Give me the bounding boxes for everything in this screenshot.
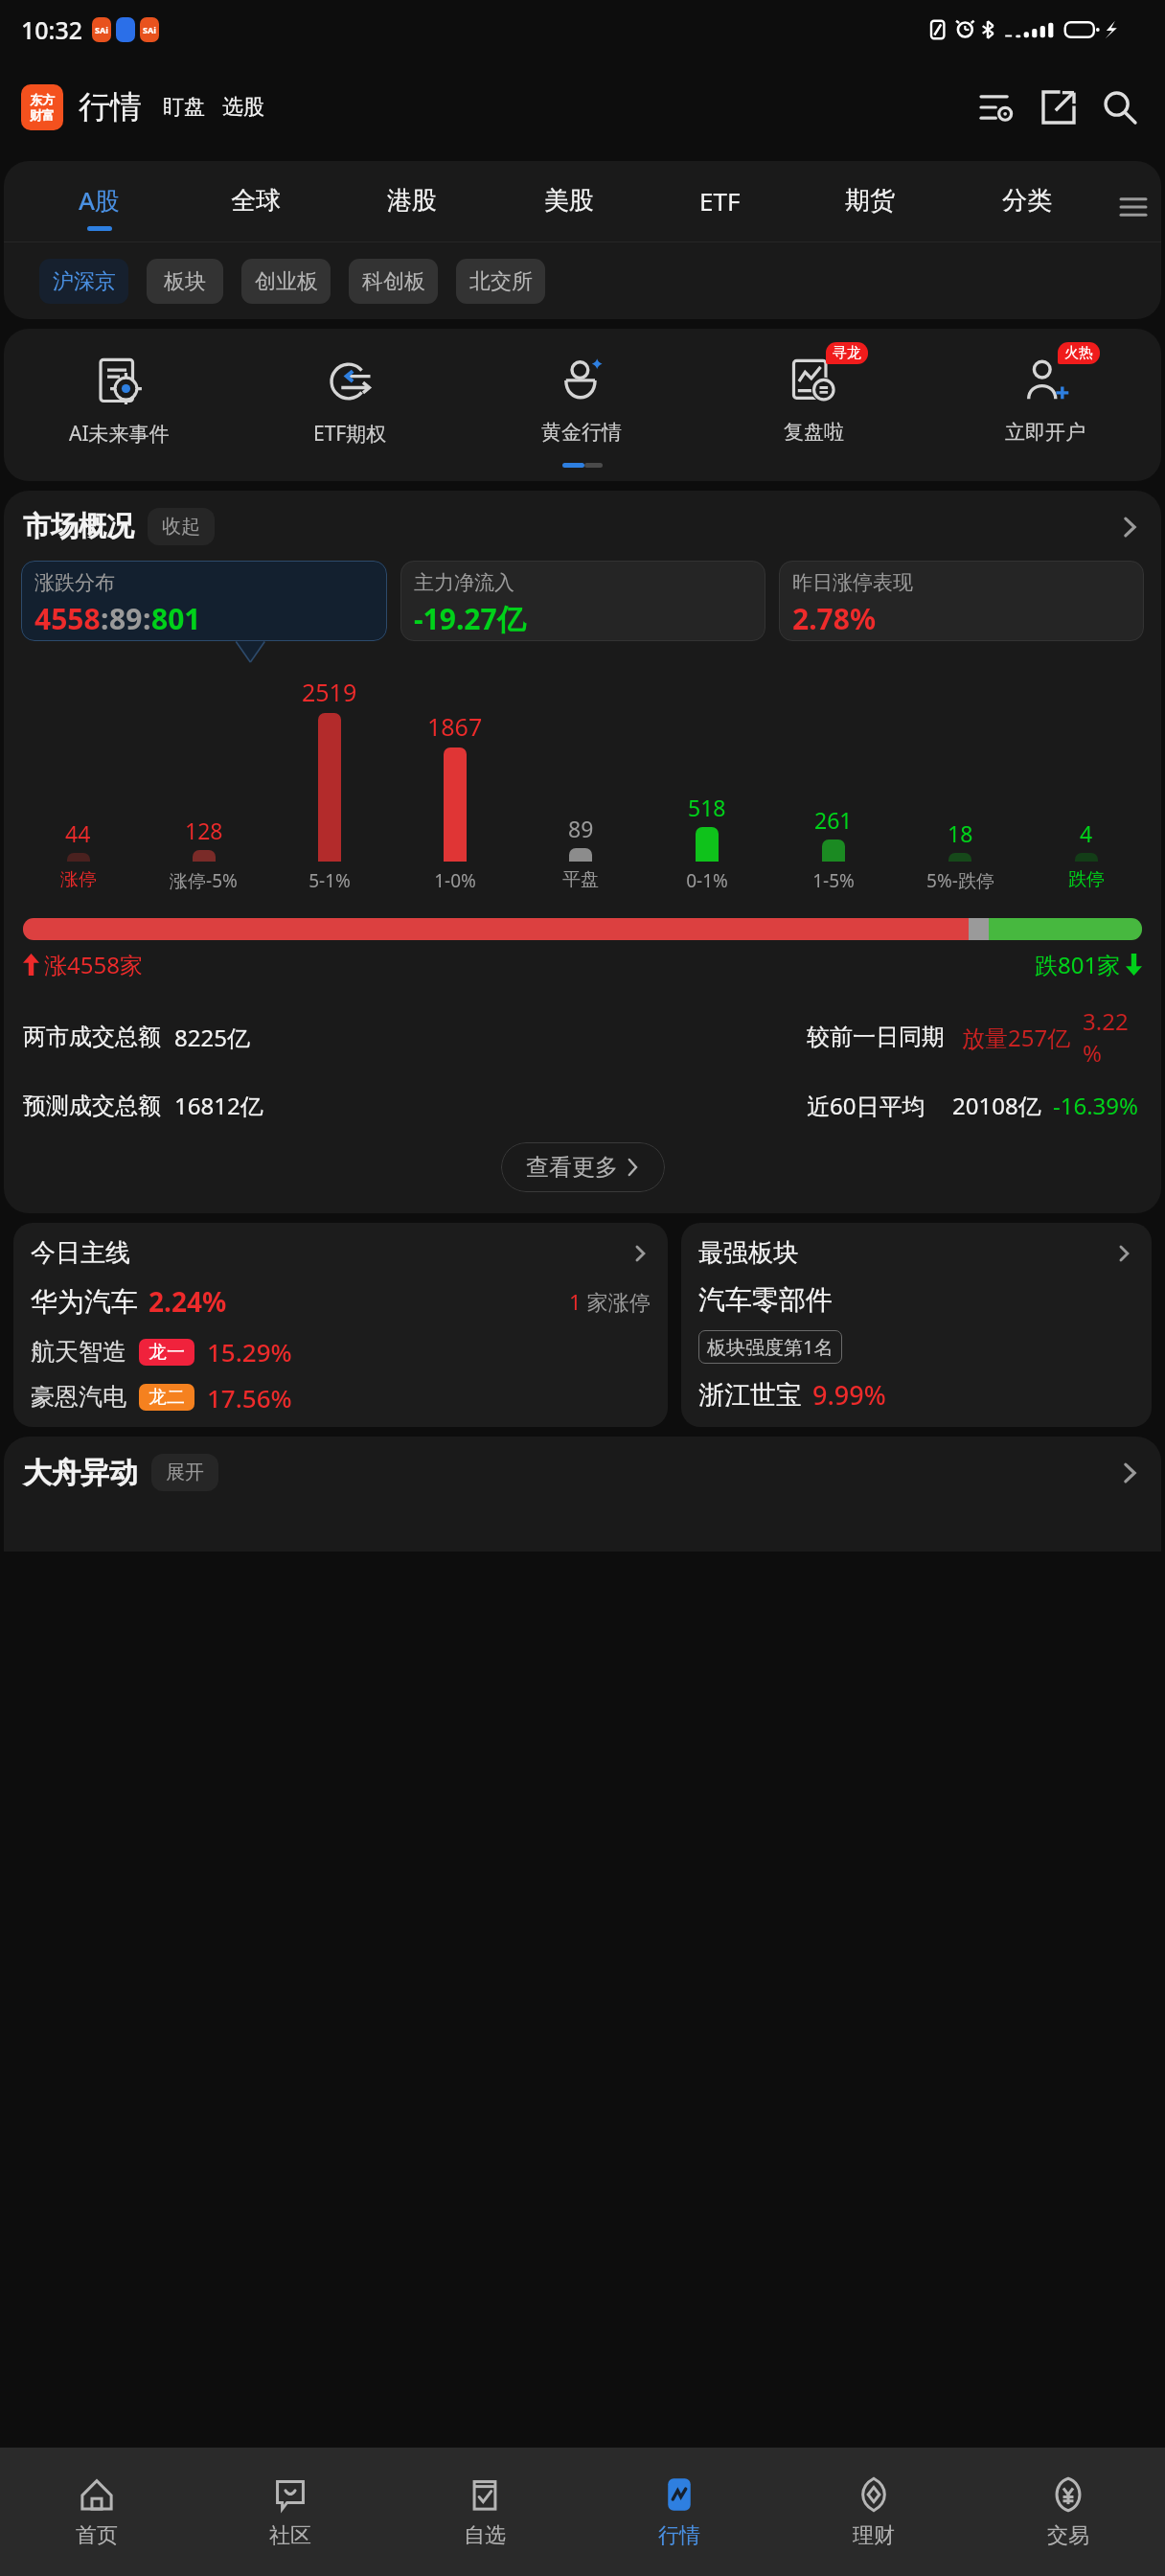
staticText: :	[101, 599, 109, 638]
button[interactable]: 黄金行情	[466, 350, 697, 445]
staticText: 5-1%	[308, 868, 351, 893]
staticText: 5%-跌停	[926, 868, 994, 893]
staticText: 1	[569, 1287, 582, 1316]
staticText: 大舟异动	[23, 1455, 138, 1491]
staticText: 复盘啦	[784, 420, 844, 445]
staticText: 89	[109, 599, 143, 638]
staticText: 放量257亿	[962, 1022, 1071, 1053]
button[interactable]: 自选	[387, 2448, 582, 2576]
staticText: 全球	[231, 185, 281, 217]
staticText: 2.24%	[148, 1283, 227, 1320]
staticText: 4558	[34, 599, 101, 638]
staticText: 北交所	[469, 268, 533, 295]
button[interactable]: 美股	[491, 172, 648, 241]
button[interactable]: 首页	[0, 2448, 194, 2576]
button[interactable]: 大舟异动	[23, 1454, 1142, 1491]
staticText: 15.29%	[207, 1335, 292, 1368]
staticText: 沪深京	[53, 268, 116, 295]
staticText: AI未来事件	[69, 420, 170, 448]
staticText: 两市成交总额	[23, 1023, 161, 1051]
staticText: 128	[185, 816, 223, 845]
staticText: 2519	[302, 676, 357, 708]
button[interactable]: 豪恩汽电	[31, 1381, 651, 1413]
button[interactable]: 港股	[333, 172, 491, 241]
staticText: 3.22%	[1083, 1005, 1142, 1069]
button[interactable]: 北交所	[456, 259, 545, 304]
staticText: 1-0%	[434, 868, 476, 893]
button[interactable]: 涨跌分布	[21, 561, 387, 641]
staticText: 16812亿	[174, 1090, 263, 1121]
staticText: 科创板	[362, 268, 425, 295]
button[interactable]: 航天智造	[31, 1335, 651, 1368]
staticText: 板块强度第1名	[707, 1334, 834, 1360]
staticText: 期货	[845, 185, 895, 217]
staticText: -16.39%	[1053, 1090, 1139, 1121]
button[interactable]: 沪深京	[39, 259, 128, 304]
button[interactable]: 查看更多	[501, 1142, 665, 1192]
staticText: 首页	[76, 2522, 118, 2549]
staticText: 龙一	[148, 1341, 185, 1364]
staticText: 4	[1080, 818, 1093, 848]
staticText: 航天智造	[31, 1337, 126, 1367]
staticText: 交易	[1047, 2522, 1089, 2549]
button[interactable]: 全球	[177, 172, 333, 241]
button[interactable]: ETF	[648, 172, 791, 241]
button[interactable]: 市场概况	[23, 508, 1142, 545]
button[interactable]: 社区	[194, 2448, 387, 2576]
button[interactable]: 交易	[971, 2448, 1165, 2576]
button[interactable]: 科创板	[349, 259, 438, 304]
button[interactable]: 昨日涨停表现	[779, 561, 1144, 641]
button[interactable]: 主力净流入	[400, 561, 765, 641]
staticText: 主力净流入	[414, 570, 514, 595]
button[interactable]: AI未来事件	[4, 350, 235, 448]
button[interactable]: 选股	[222, 94, 264, 121]
staticText: :	[143, 599, 151, 638]
button[interactable]: ETF期权	[235, 350, 466, 448]
staticText: 8225亿	[174, 1022, 250, 1053]
button[interactable]: 分类	[948, 172, 1106, 241]
staticText: 自选	[464, 2522, 506, 2549]
staticText: 最强板块	[698, 1237, 798, 1269]
button[interactable]: 理财	[776, 2448, 971, 2576]
staticText: 财富	[30, 107, 55, 123]
staticText: 涨停	[60, 868, 97, 891]
staticText: 518	[688, 793, 726, 822]
button[interactable]: 行情	[582, 2448, 776, 2576]
staticText: 港股	[387, 185, 437, 217]
button[interactable]: 火热	[929, 350, 1161, 445]
staticText: 今日主线	[31, 1237, 130, 1269]
button[interactable]: Settings list	[975, 85, 1019, 129]
staticText: 18	[948, 818, 973, 848]
staticText: 社区	[269, 2522, 311, 2549]
button[interactable]: A股	[21, 172, 177, 241]
staticText: 行情	[658, 2522, 700, 2549]
button[interactable]: Share	[1037, 85, 1081, 129]
button[interactable]: 盯盘	[163, 94, 205, 121]
button[interactable]: 最强板块	[681, 1223, 1152, 1427]
staticText: 黄金行情	[541, 420, 622, 445]
staticText: 1867	[427, 710, 483, 743]
button[interactable]: More tabs	[1106, 172, 1161, 241]
staticText: 9.99%	[812, 1377, 886, 1413]
staticText: 查看更多	[526, 1153, 618, 1182]
button[interactable]: 行情	[79, 87, 142, 127]
staticText: 预测成交总额	[23, 1092, 161, 1120]
staticText: 浙江世宝	[698, 1379, 802, 1412]
staticText: 平盘	[562, 868, 599, 891]
button[interactable]: Search	[1098, 85, 1142, 129]
staticText: -19.27亿	[414, 599, 526, 638]
staticText: 汽车零部件	[698, 1283, 833, 1317]
staticText: 市场概况	[23, 509, 134, 544]
button[interactable]: 今日主线	[13, 1223, 668, 1427]
staticText: 家涨停	[582, 1287, 651, 1316]
staticText: 寻龙	[833, 344, 861, 362]
button[interactable]: 创业板	[241, 259, 331, 304]
button[interactable]: 期货	[791, 172, 948, 241]
button[interactable]: 板块	[147, 259, 223, 304]
button[interactable]: 寻龙	[697, 350, 929, 445]
button[interactable]: 东方	[21, 84, 63, 130]
button[interactable]: 收起	[162, 515, 200, 539]
staticText: 涨跌分布	[34, 570, 115, 595]
staticText: 涨停-5%	[170, 868, 238, 893]
staticText: 801	[151, 599, 201, 638]
